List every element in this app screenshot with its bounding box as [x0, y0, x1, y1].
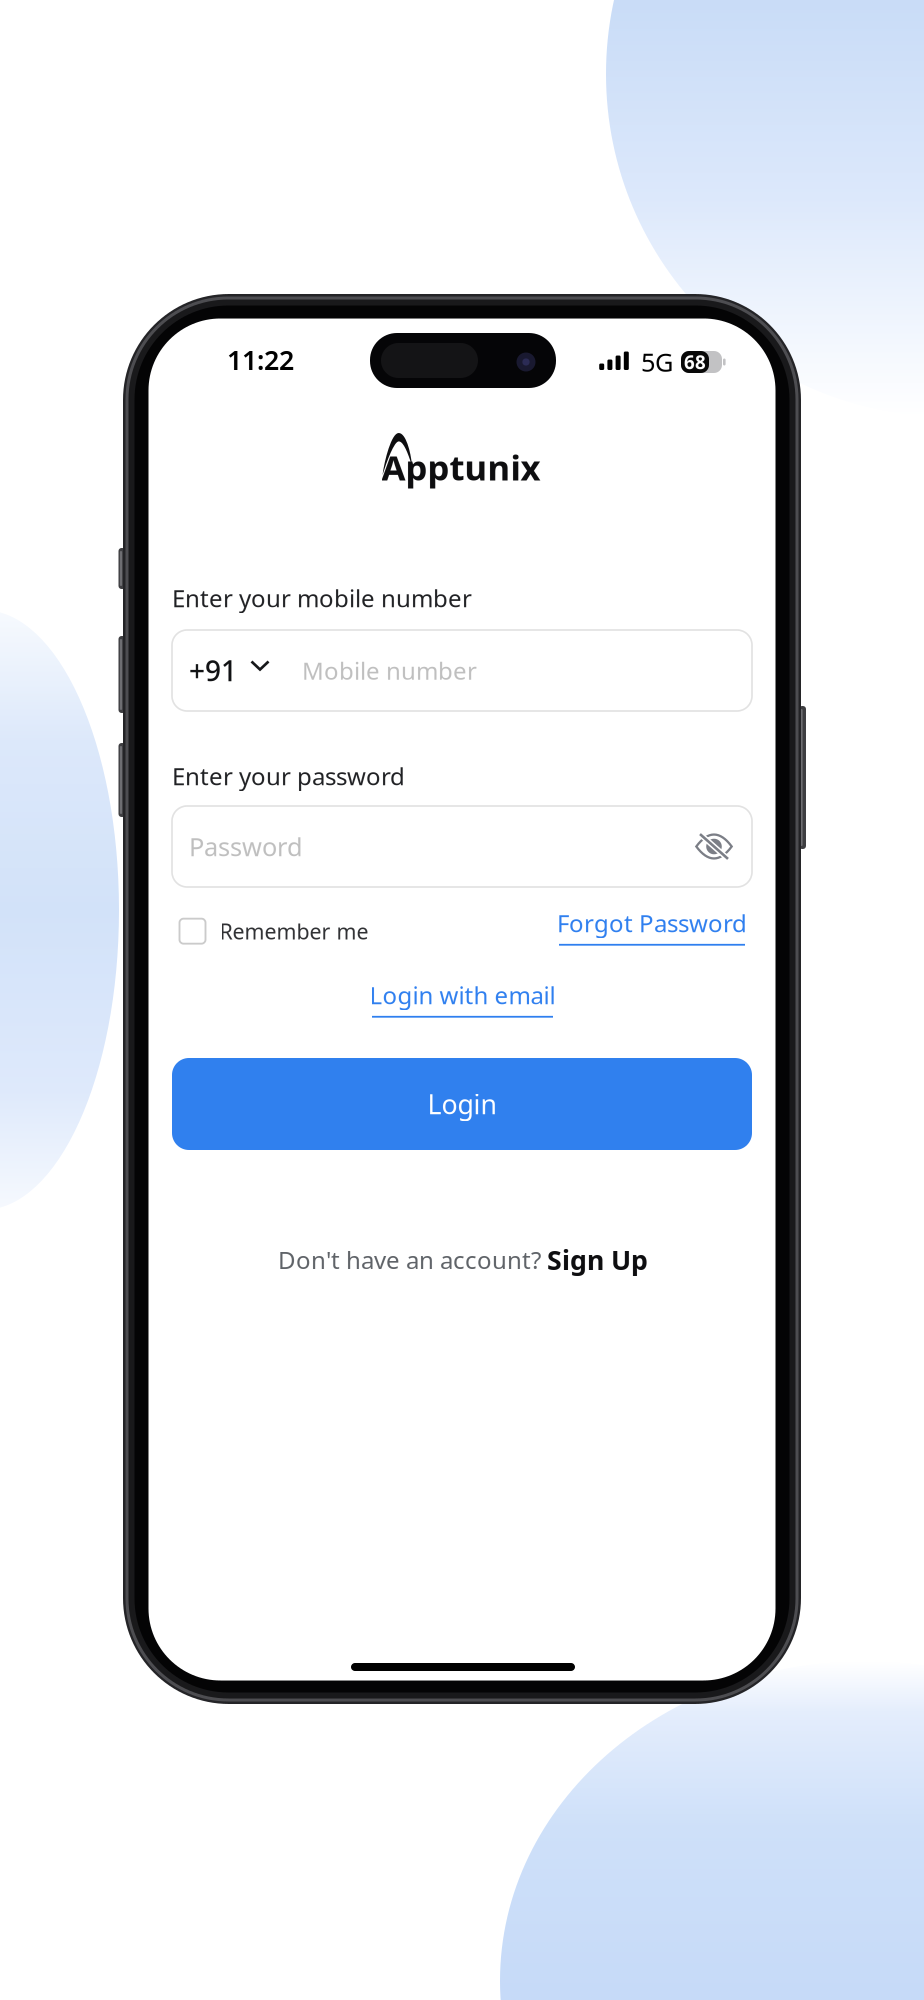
- staticText: Login with email: [369, 979, 555, 1011]
- button[interactable]: Login: [172, 1058, 752, 1150]
- button[interactable]: Password: [172, 806, 695, 887]
- staticText: Don't have an account?: [278, 1244, 547, 1276]
- staticText: Remember me: [219, 917, 368, 945]
- staticText: Mobile number: [302, 655, 477, 686]
- button[interactable]: Remember me: [179, 917, 368, 945]
- staticText: 5G: [641, 345, 673, 379]
- staticText: Sign Up: [547, 1242, 648, 1277]
- button[interactable]: Mobile number: [270, 630, 752, 711]
- staticText: 68: [684, 350, 706, 374]
- staticText: 11:22: [227, 342, 294, 377]
- button[interactable]: Sign Up: [547, 1242, 648, 1277]
- button[interactable]: Login with email: [372, 979, 553, 1018]
- staticText: Enter your password: [172, 760, 405, 792]
- staticText: Password: [189, 830, 303, 863]
- staticText: Apptunix: [381, 444, 540, 490]
- staticText: Login: [427, 1086, 496, 1122]
- staticText: +91: [189, 652, 237, 689]
- button[interactable]: +91: [172, 630, 270, 711]
- button[interactable]: Show password: [695, 815, 752, 877]
- staticText: Enter your mobile number: [172, 582, 472, 614]
- button[interactable]: Forgot Password: [559, 907, 745, 946]
- staticText: Forgot Password: [557, 907, 747, 939]
